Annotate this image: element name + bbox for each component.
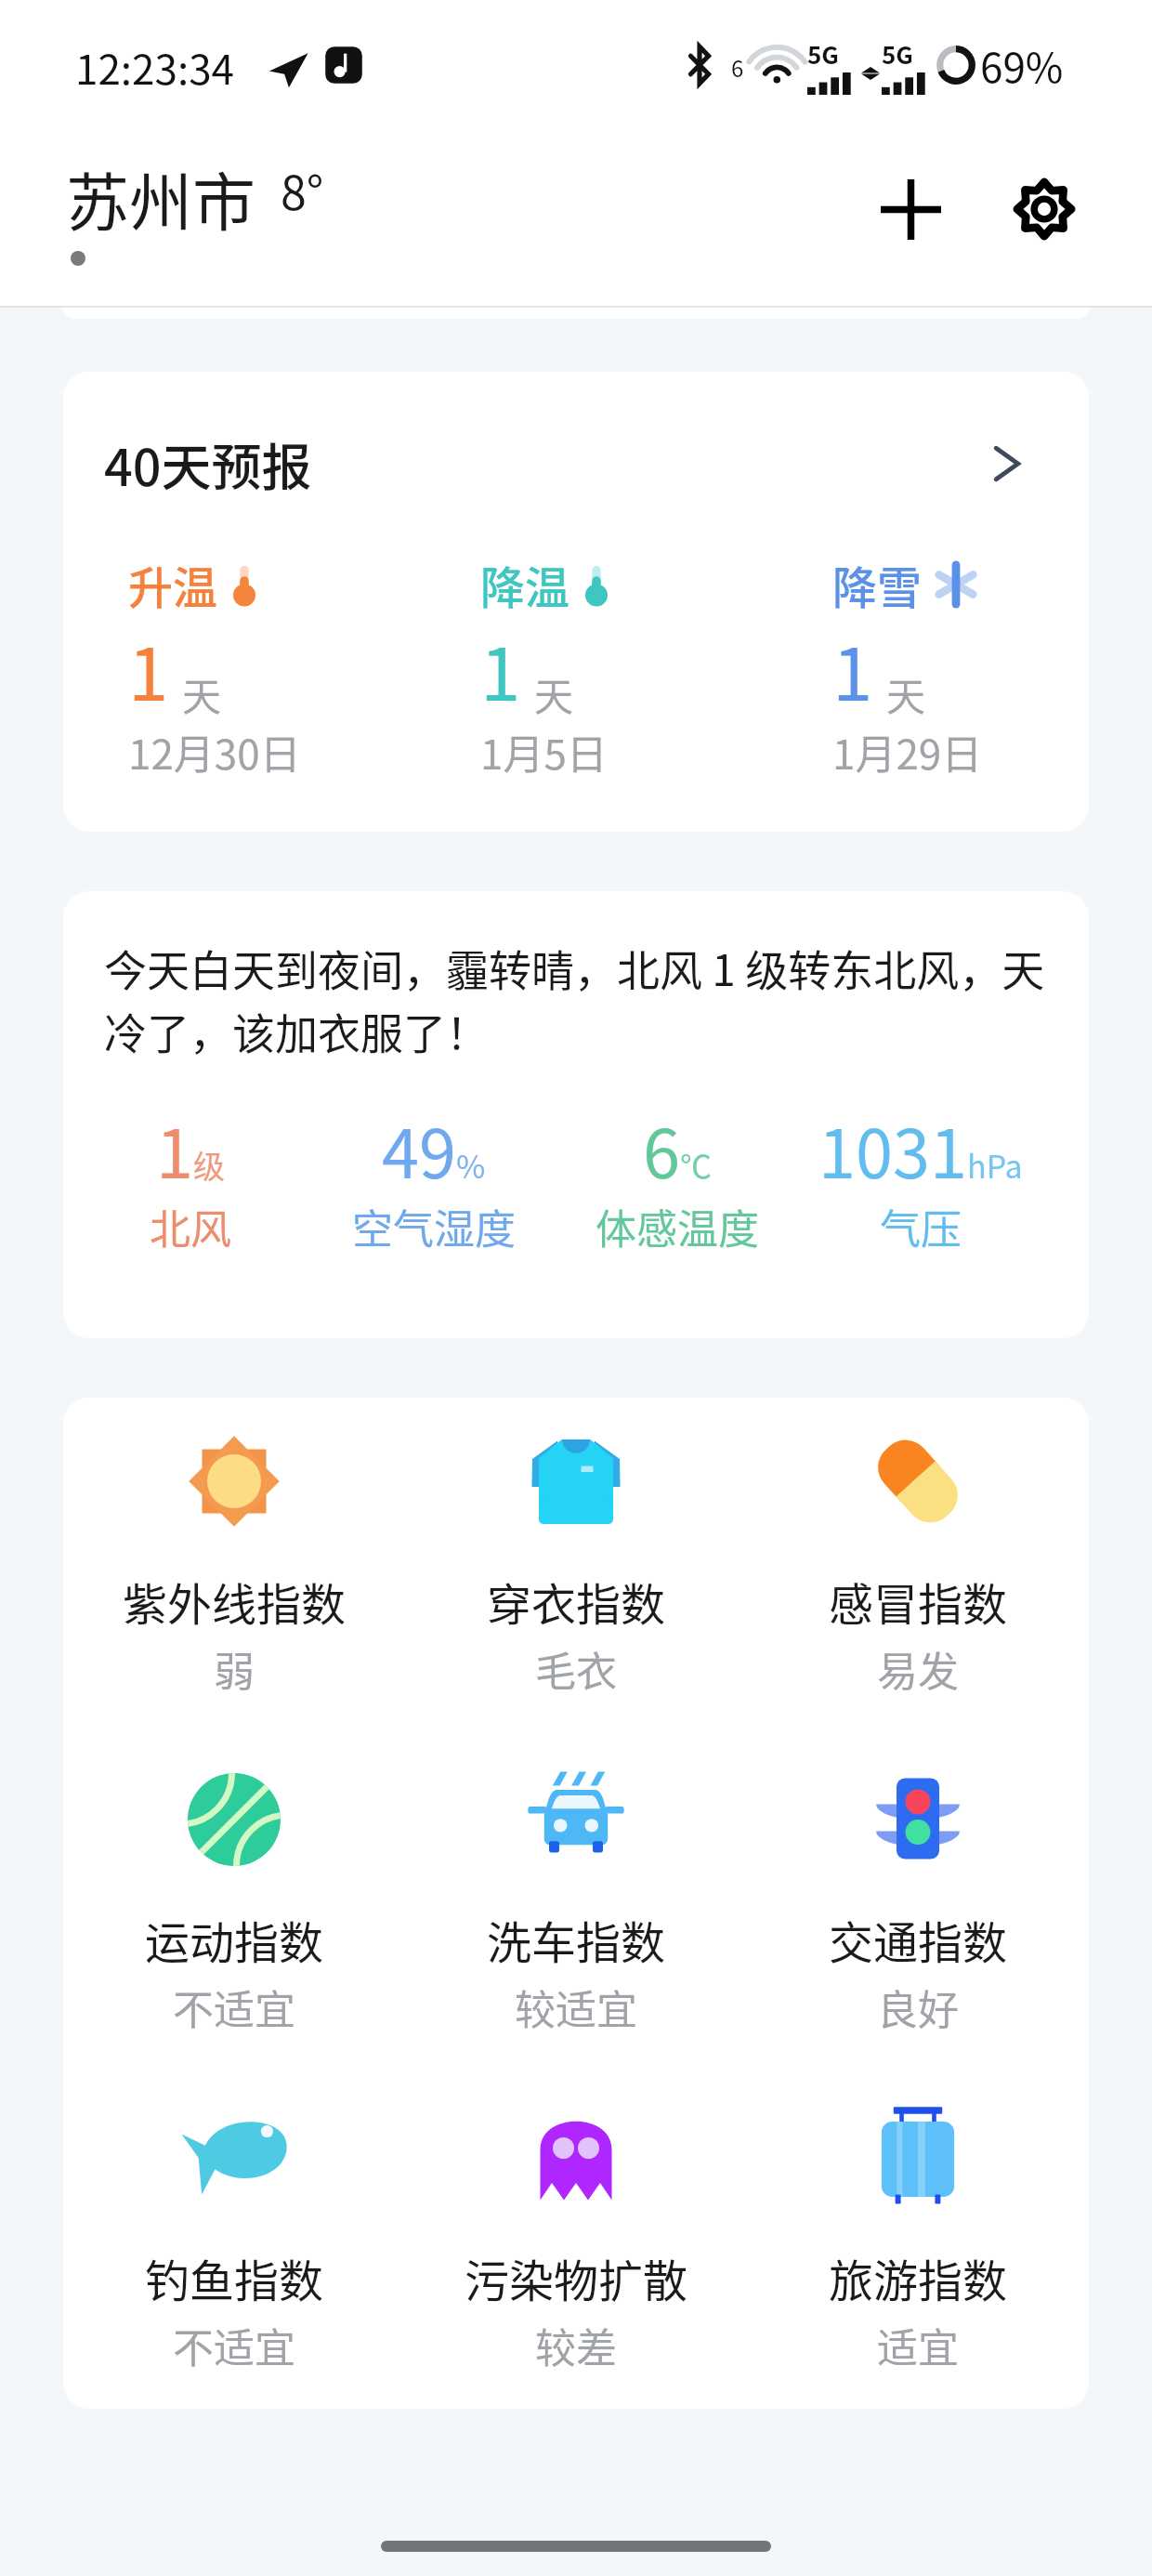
button[interactable]: 今天白天到夜间，霾转晴，北风 1 级转东北风，天冷了，该加衣服了！: [63, 891, 1089, 1338]
button[interactable]: 污染物扩散: [405, 2111, 747, 2375]
button[interactable]: 交通指数: [747, 1773, 1089, 2037]
staticText: 气压: [880, 1197, 962, 1256]
staticText: 较差: [535, 2316, 617, 2375]
staticText: 旅游指数: [829, 2245, 1008, 2310]
staticText: 级: [193, 1142, 225, 1188]
button[interactable]: 40天预报: [104, 427, 1057, 500]
staticText: 天: [886, 665, 926, 722]
staticText: 12月30日: [128, 722, 301, 782]
staticText: 降温: [480, 552, 570, 617]
button[interactable]: 钓鱼指数: [63, 2111, 405, 2375]
staticText: 12:23:34: [75, 37, 234, 97]
staticText: 6: [643, 1100, 680, 1197]
staticText: 天: [534, 665, 574, 722]
staticText: ℃: [680, 1142, 712, 1188]
button[interactable]: Add city: [858, 157, 962, 261]
staticText: %: [456, 1142, 486, 1188]
staticText: 感冒指数: [829, 1569, 1008, 1634]
staticText: 今天白天到夜间，霾转晴，北风 1 级转东北风，天冷了，该加衣服了！: [104, 937, 1070, 1062]
staticText: 适宜: [877, 2316, 959, 2375]
staticText: 不适宜: [173, 2316, 295, 2375]
staticText: 空气湿度: [352, 1197, 516, 1256]
staticText: 苏州市: [66, 152, 256, 243]
staticText: 运动指数: [145, 1907, 324, 1972]
staticText: 体感温度: [596, 1197, 759, 1256]
staticText: hPa: [967, 1142, 1023, 1188]
staticText: 1: [128, 617, 169, 722]
staticText: 49: [382, 1100, 456, 1197]
staticText: 1: [832, 617, 873, 722]
button[interactable]: 40天预报: [63, 372, 1089, 832]
staticText: 1: [156, 1100, 193, 1197]
staticText: 良好: [877, 1978, 959, 2037]
staticText: 1031: [818, 1100, 967, 1197]
staticText: 40天预报: [104, 427, 312, 500]
staticText: 弱: [214, 1639, 255, 1699]
staticText: 交通指数: [829, 1907, 1008, 1972]
button[interactable]: Settings: [992, 157, 1096, 261]
staticText: 1: [480, 617, 521, 722]
staticText: 易发: [877, 1639, 959, 1699]
button[interactable]: 紫外线指数: [63, 1435, 405, 1699]
staticText: 1月5日: [480, 722, 608, 782]
staticText: 洗车指数: [487, 1907, 666, 1972]
button[interactable]: 穿衣指数: [405, 1435, 747, 1699]
button[interactable]: 洗车指数: [405, 1773, 747, 2037]
staticText: 5G: [807, 36, 839, 72]
staticText: 不适宜: [173, 1978, 295, 2037]
button[interactable]: 感冒指数: [747, 1435, 1089, 1699]
staticText: 毛衣: [535, 1639, 617, 1699]
staticText: 较适宜: [515, 1978, 637, 2037]
staticText: 污染物扩散: [465, 2245, 688, 2310]
staticText: 穿衣指数: [487, 1569, 666, 1634]
staticText: 北风: [150, 1197, 231, 1256]
button[interactable]: 旅游指数: [747, 2111, 1089, 2375]
staticText: 天: [182, 665, 222, 722]
button[interactable]: 运动指数: [63, 1773, 405, 2037]
staticText: 8°: [281, 156, 324, 223]
staticText: 5G: [882, 36, 913, 72]
staticText: 69%: [980, 35, 1064, 95]
staticText: 钓鱼指数: [145, 2245, 324, 2310]
staticText: 升温: [128, 552, 218, 617]
staticText: 1月29日: [832, 722, 983, 782]
staticText: 降雪: [832, 552, 923, 617]
staticText: 6: [731, 51, 744, 84]
staticText: 紫外线指数: [123, 1569, 347, 1634]
